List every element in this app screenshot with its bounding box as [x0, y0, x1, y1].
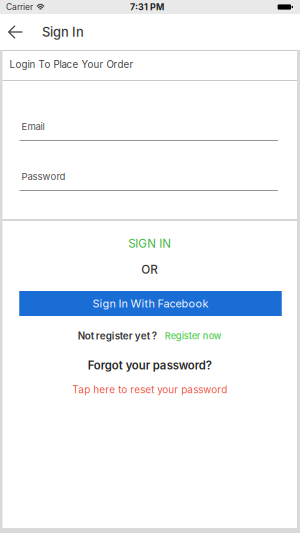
staticText: Register now — [165, 331, 222, 341]
button[interactable]: Password — [2, 170, 297, 191]
staticText: Sign In With Facebook — [92, 297, 208, 310]
staticText: Forgot your password? — [88, 359, 212, 372]
staticText: Carrier — [6, 2, 33, 12]
staticText: Sign In — [42, 24, 84, 40]
staticText: Password — [21, 171, 65, 182]
staticText: SIGN IN — [128, 237, 171, 250]
button[interactable]: Email — [2, 120, 297, 141]
staticText: OR — [141, 263, 158, 276]
staticText: 7:31 PM — [130, 2, 164, 12]
button[interactable]: Sign In With Facebook — [18, 291, 281, 316]
staticText: Login To Place Your Order — [9, 59, 133, 70]
button[interactable]: Back — [0, 14, 23, 50]
staticText: Tap here to reset your password — [72, 384, 227, 395]
button[interactable]: SIGN IN — [128, 237, 171, 250]
button[interactable]: Tap here to reset your password — [72, 383, 227, 396]
staticText: Email — [21, 121, 44, 132]
button[interactable]: Register now — [165, 331, 222, 341]
staticText: Not register yet ? — [78, 330, 157, 342]
